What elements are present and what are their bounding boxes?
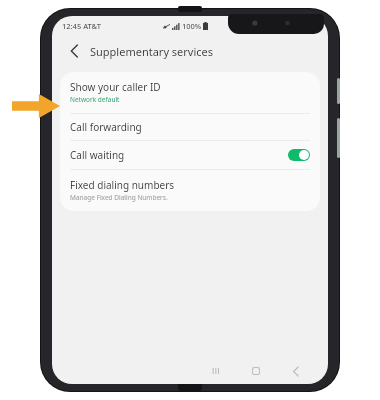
- staticText: Network default: [70, 95, 120, 104]
- button[interactable]: Recents: [196, 358, 236, 384]
- staticText: Manage Fixed Dialing Numbers.: [70, 193, 168, 202]
- button[interactable]: Back: [64, 41, 84, 61]
- button[interactable]: Show your caller ID: [60, 72, 320, 113]
- other: Call waiting on: [288, 149, 310, 161]
- staticText: Show your caller ID: [70, 80, 161, 94]
- button[interactable]: Call waiting: [60, 141, 320, 169]
- staticText: 12:45 AT&T: [62, 21, 101, 31]
- staticText: Call forwarding: [70, 120, 142, 134]
- staticText: Fixed dialing numbers: [70, 178, 175, 192]
- staticText: Supplementary services: [90, 44, 214, 59]
- button[interactable]: Home: [236, 358, 276, 384]
- staticText: 100%: [182, 21, 202, 31]
- staticText: Call waiting: [70, 148, 125, 162]
- button[interactable]: Back: [276, 358, 316, 384]
- button[interactable]: Call forwarding: [60, 114, 320, 140]
- button[interactable]: Fixed dialing numbers: [60, 170, 320, 211]
